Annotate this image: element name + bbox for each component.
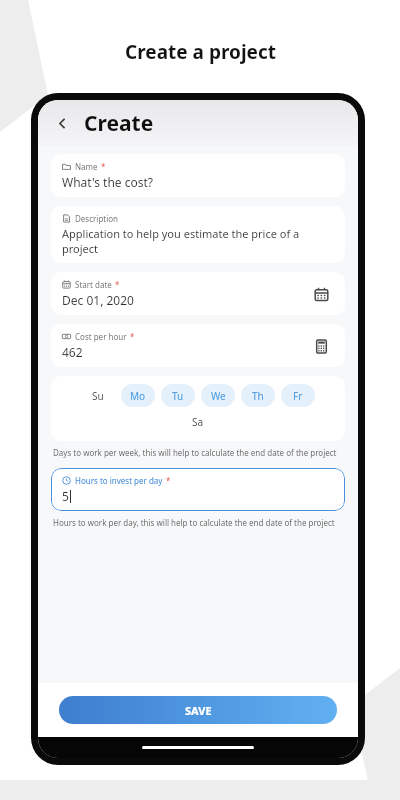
staticText: Description: [75, 213, 119, 224]
staticText: Start date: [75, 279, 112, 290]
staticText: Create a project: [125, 39, 276, 65]
button[interactable]: SAVE: [59, 696, 337, 724]
button[interactable]: Description: [51, 206, 345, 263]
staticText: What's the cost?: [62, 174, 154, 190]
button[interactable]: Calculator: [308, 333, 334, 359]
staticText: Name: [75, 161, 98, 172]
button[interactable]: Th: [241, 384, 275, 407]
button[interactable]: Start date: [51, 272, 345, 315]
staticText: Create: [84, 109, 154, 138]
button[interactable]: Mo: [121, 384, 155, 407]
button[interactable]: Sa: [181, 410, 215, 433]
staticText: Cost per hour: [75, 331, 127, 342]
staticText: SAVE: [185, 703, 212, 718]
button[interactable]: Tu: [161, 384, 195, 407]
button[interactable]: Pick date: [308, 281, 334, 307]
staticText: Tu: [172, 389, 184, 403]
staticText: *: [115, 279, 120, 290]
staticText: Hours to work per day, this will help to…: [53, 517, 343, 528]
staticText: We: [211, 389, 226, 403]
staticText: *: [101, 161, 106, 172]
staticText: Mo: [130, 389, 146, 403]
staticText: 462: [62, 344, 83, 360]
staticText: Fr: [293, 389, 303, 403]
button[interactable]: Cost per hour: [51, 324, 345, 367]
button[interactable]: Su: [81, 384, 115, 407]
staticText: Hours to invest per day: [75, 475, 163, 486]
button[interactable]: Fr: [281, 384, 315, 407]
button[interactable]: We: [201, 384, 235, 407]
staticText: 5: [62, 488, 69, 504]
staticText: Th: [252, 389, 264, 403]
button[interactable]: Back: [49, 110, 75, 136]
staticText: *: [166, 475, 171, 486]
button[interactable]: Hours to invest per day: [51, 468, 345, 511]
staticText: Days to work per week, this will help to…: [53, 447, 343, 458]
button[interactable]: Name: [51, 154, 345, 197]
staticText: Sa: [192, 415, 204, 429]
staticText: Application to help you estimate the pri…: [62, 226, 334, 256]
staticText: Su: [92, 389, 104, 403]
staticText: *: [130, 331, 135, 342]
staticText: Dec 01, 2020: [62, 292, 134, 308]
